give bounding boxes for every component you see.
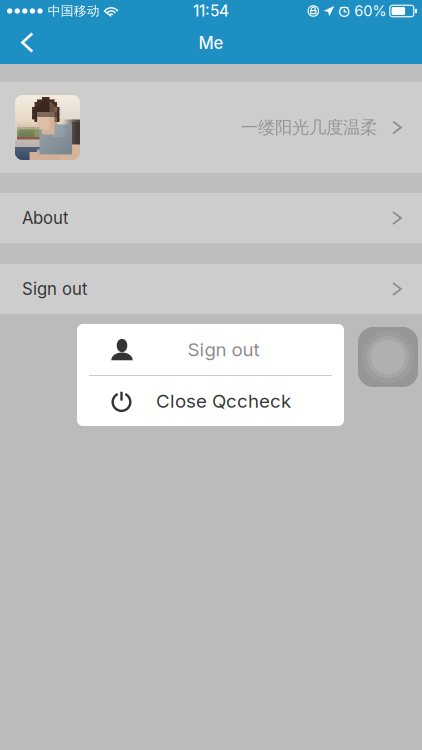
- staticText: 60%: [354, 2, 386, 20]
- button[interactable]: 一缕阳光几度温柔: [0, 82, 422, 173]
- button[interactable]: Sign out: [77, 324, 344, 375]
- button[interactable]: Sign out: [0, 264, 422, 314]
- staticText: 一缕阳光几度温柔: [241, 117, 377, 138]
- staticText: Close Qccheck: [156, 390, 291, 412]
- staticText: Me: [198, 33, 223, 53]
- staticText: 中国移动: [48, 3, 100, 19]
- staticText: 11:54: [193, 2, 229, 20]
- staticText: About: [22, 208, 68, 228]
- button[interactable]: Close Qccheck: [77, 376, 344, 426]
- button[interactable]: AssistiveTouch: [358, 327, 418, 387]
- button[interactable]: Back: [0, 22, 52, 64]
- staticText: Sign out: [22, 279, 87, 299]
- staticText: Sign out: [187, 338, 259, 361]
- button[interactable]: About: [0, 193, 422, 243]
